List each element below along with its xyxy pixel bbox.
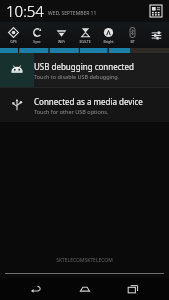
button[interactable]: Bright	[97, 22, 119, 48]
button[interactable]: Back	[23, 278, 49, 300]
staticText: Touch for other USB options.	[34, 108, 109, 115]
staticText: SKTELECOMSKTELECOM	[56, 257, 113, 264]
staticText: GPS	[10, 39, 17, 44]
staticText: WED, SEPTEMBER 11	[48, 10, 97, 17]
staticText: Sync	[33, 39, 41, 44]
staticText: Connected as a media device	[34, 96, 143, 107]
staticText: 3G/LTE	[79, 39, 91, 44]
button[interactable]: Close notification shade	[0, 268, 169, 278]
button[interactable]: Connected as a media device	[0, 88, 169, 122]
button[interactable]: 3G/LTE	[74, 22, 96, 48]
button[interactable]: Recent apps	[120, 278, 146, 300]
button[interactable]: Home	[72, 278, 98, 300]
staticText: Touch to disable USB debugging.	[34, 73, 120, 80]
button[interactable]: Quick settings	[147, 2, 165, 20]
staticText: WiFi	[58, 39, 65, 44]
button[interactable]: BT	[121, 22, 143, 48]
button[interactable]: Settings	[145, 22, 167, 48]
button[interactable]: WiFi	[50, 22, 72, 48]
staticText: 10:54	[6, 1, 44, 21]
staticText: Bright	[103, 39, 114, 44]
staticText: USB debugging connected	[34, 61, 134, 72]
staticText: BT	[130, 39, 135, 44]
button[interactable]: Brightness	[0, 48, 169, 53]
button[interactable]: GPS	[2, 22, 24, 48]
button[interactable]: Sync	[26, 22, 48, 48]
button[interactable]: USB debugging connected	[0, 53, 169, 87]
